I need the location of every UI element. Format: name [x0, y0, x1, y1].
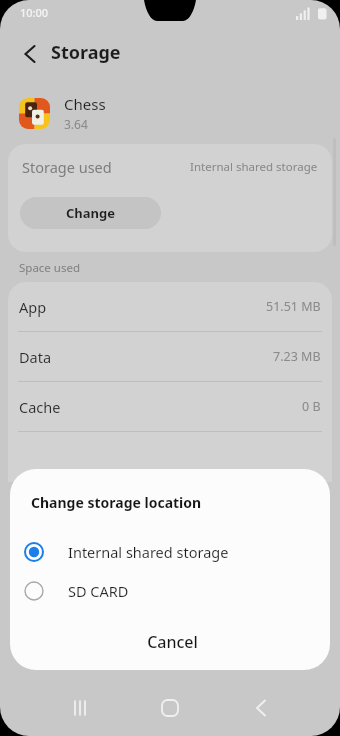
button[interactable]: App	[8, 282, 332, 331]
button[interactable]: Cancel	[10, 622, 330, 670]
button[interactable]: Cache	[8, 382, 332, 431]
button[interactable]: Home	[152, 690, 188, 726]
staticText: Change storage location	[31, 493, 202, 512]
button[interactable]: Internal shared storage	[10, 532, 330, 571]
staticText: Storage	[51, 40, 121, 65]
button[interactable]: Back	[243, 690, 279, 726]
staticText: 0 B	[302, 398, 321, 415]
staticText: Chess	[64, 94, 106, 114]
button[interactable]: Recent apps	[62, 690, 98, 726]
button[interactable]: Back	[12, 36, 48, 72]
staticText: Space used	[19, 260, 81, 276]
staticText: Change	[66, 204, 116, 222]
staticText: Data	[19, 347, 52, 367]
button[interactable]: Change	[20, 197, 161, 229]
staticText: Cancel	[147, 631, 198, 653]
staticText: SD CARD	[68, 581, 129, 601]
staticText: Cache	[19, 397, 61, 417]
staticText: App	[19, 297, 47, 317]
button[interactable]: SD CARD	[10, 571, 330, 610]
staticText: 7.23 MB	[273, 348, 321, 365]
staticText: 51.51 MB	[266, 298, 321, 315]
staticText: Internal shared storage	[68, 542, 229, 562]
staticText: 3.64	[64, 116, 88, 132]
staticText: 10:00	[20, 5, 49, 20]
staticText: Internal shared storage	[190, 159, 318, 175]
button[interactable]: Data	[8, 332, 332, 381]
staticText: Storage used	[22, 157, 112, 177]
